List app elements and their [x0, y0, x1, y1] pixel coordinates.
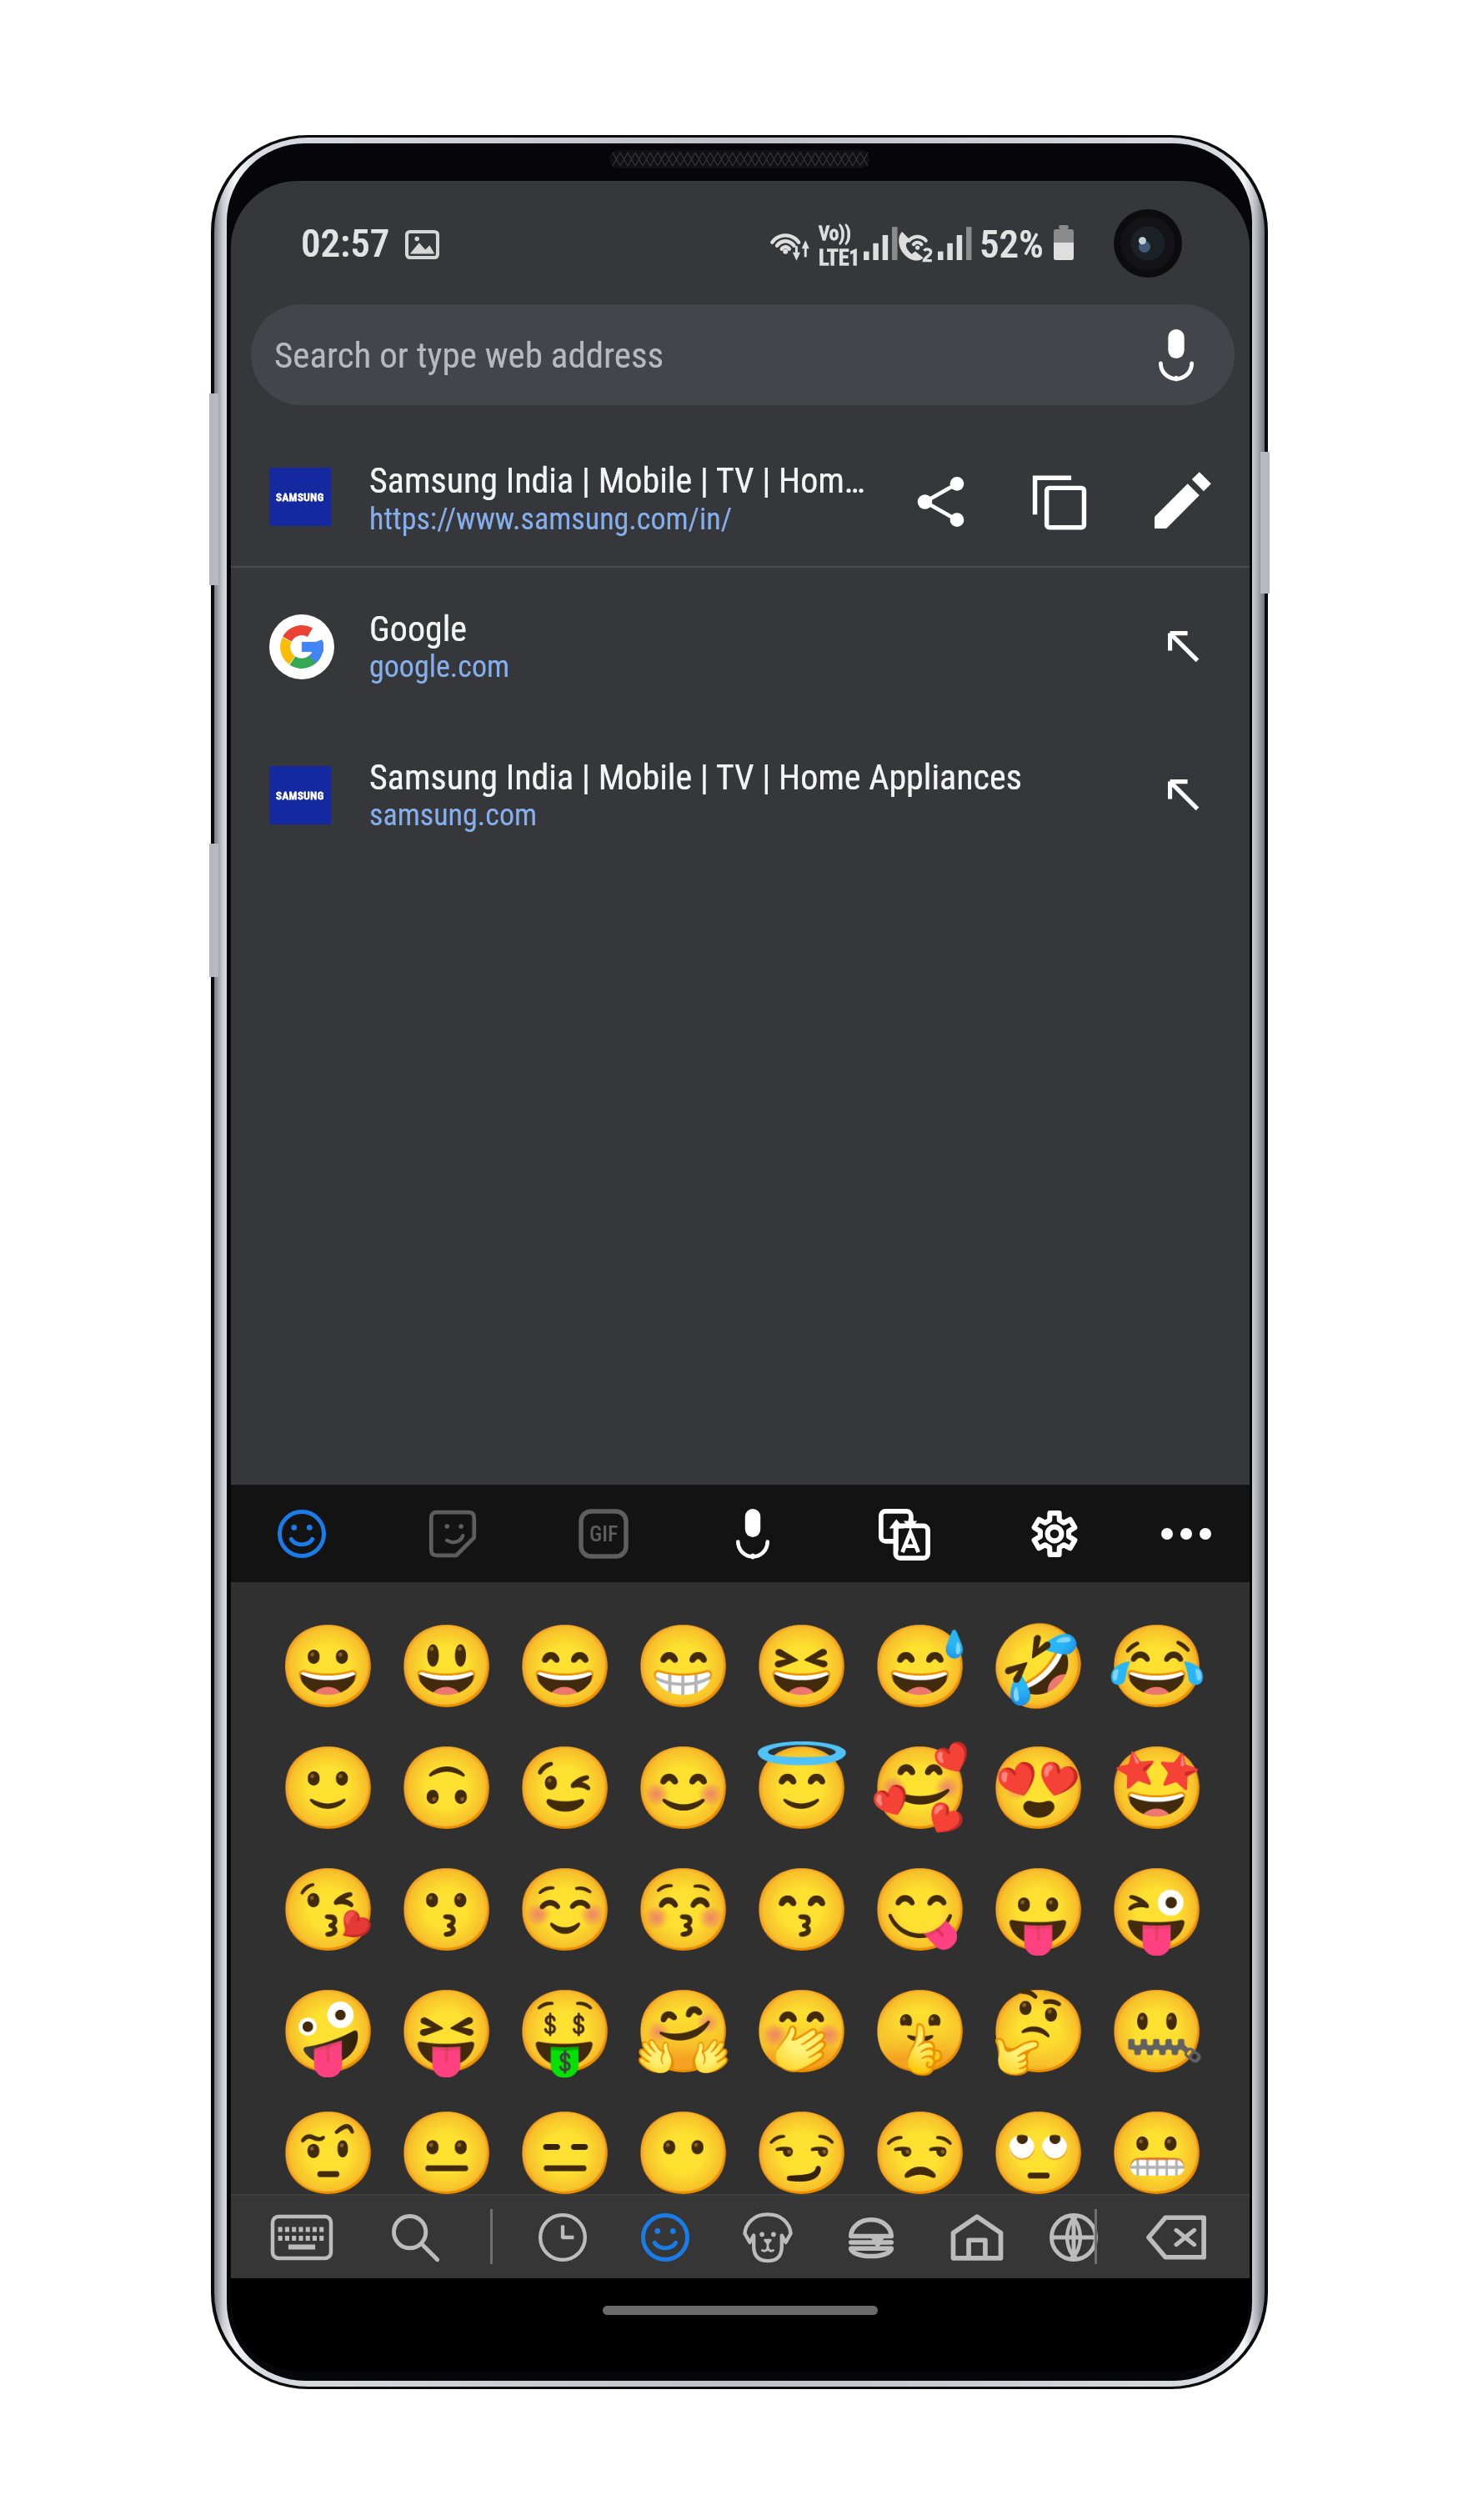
- button[interactable]: SAMSUNG: [231, 720, 1250, 869]
- staticText: 🤩: [1107, 1741, 1207, 1836]
- button[interactable]: 😘: [269, 1849, 388, 1971]
- button[interactable]: 🤫: [861, 1971, 979, 2092]
- staticText: 😑: [515, 2107, 615, 2201]
- button[interactable]: Recently used: [521, 2196, 604, 2278]
- staticText: 😊: [634, 1741, 734, 1836]
- button[interactable]: 😜: [1098, 1849, 1216, 1971]
- button[interactable]: 😊: [624, 1727, 743, 1849]
- button[interactable]: 🤗: [624, 1971, 743, 2092]
- staticText: google.com: [369, 649, 510, 684]
- staticText: 😐: [397, 2107, 497, 2201]
- staticText: 🤗: [634, 1985, 734, 2079]
- button[interactable]: Insert suggestion: [1142, 720, 1225, 869]
- button[interactable]: Keyboard: [260, 2196, 343, 2278]
- button[interactable]: Food and drink: [829, 2196, 913, 2278]
- button[interactable]: 🤪: [269, 1971, 388, 2092]
- button[interactable]: Animals and nature: [726, 2196, 809, 2278]
- button[interactable]: Smileys and people: [624, 2196, 707, 2278]
- button[interactable]: Activities: [1032, 2196, 1115, 2278]
- button[interactable]: GIF: [555, 1485, 652, 1582]
- button[interactable]: 😃: [388, 1606, 506, 1727]
- button[interactable]: Emoji: [253, 1485, 350, 1582]
- button[interactable]: 😇: [743, 1727, 861, 1849]
- staticText: 😀: [278, 1620, 378, 1714]
- button[interactable]: 😆: [743, 1606, 861, 1727]
- staticText: 😏: [752, 2107, 852, 2201]
- button[interactable]: Stickers: [404, 1485, 501, 1582]
- button[interactable]: 🙄: [979, 2092, 1098, 2214]
- button[interactable]: 🤭: [743, 1971, 861, 2092]
- button[interactable]: 🤐: [1098, 1971, 1216, 2092]
- staticText: SAMSUNG: [276, 789, 324, 802]
- button[interactable]: 🤣: [979, 1606, 1098, 1727]
- button[interactable]: 😶: [624, 2092, 743, 2214]
- staticText: 🤑: [515, 1985, 615, 2079]
- staticText: https://www.samsung.com/in/: [369, 502, 733, 537]
- staticText: 😍: [989, 1741, 1089, 1836]
- button[interactable]: 😏: [743, 2092, 861, 2214]
- button[interactable]: 😁: [624, 1606, 743, 1727]
- staticText: 😙: [752, 1863, 852, 1957]
- staticText: GIF: [589, 1521, 619, 1546]
- button[interactable]: 🥰: [861, 1727, 979, 1849]
- button[interactable]: 😬: [1098, 2092, 1216, 2214]
- button[interactable]: 😋: [861, 1849, 979, 1971]
- staticText: 😇: [752, 1741, 852, 1836]
- button[interactable]: Google: [231, 572, 1250, 721]
- staticText: ☺️: [515, 1863, 615, 1957]
- staticText: 😘: [278, 1863, 378, 1957]
- button[interactable]: 😂: [1098, 1606, 1216, 1727]
- button[interactable]: Edit: [1131, 452, 1231, 552]
- button[interactable]: Keyboard settings: [1006, 1485, 1103, 1582]
- button[interactable]: 😀: [269, 1606, 388, 1727]
- staticText: 😅: [870, 1620, 970, 1714]
- button[interactable]: 🤨: [269, 2092, 388, 2214]
- button[interactable]: 😛: [979, 1849, 1098, 1971]
- button[interactable]: ☺️: [506, 1849, 624, 1971]
- staticText: 😒: [870, 2107, 970, 2201]
- button[interactable]: Translate: [855, 1485, 952, 1582]
- button[interactable]: Search emoji: [373, 2196, 457, 2278]
- staticText: Vo)): [819, 223, 852, 245]
- staticText: 02:57: [301, 220, 390, 266]
- staticText: 😬: [1107, 2107, 1207, 2201]
- button[interactable]: 😐: [388, 2092, 506, 2214]
- button[interactable]: 😚: [624, 1849, 743, 1971]
- staticText: 🤣: [989, 1620, 1089, 1714]
- button[interactable]: SAMSUNG: [231, 417, 1250, 569]
- staticText: 😉: [515, 1741, 615, 1836]
- staticText: 52%: [979, 221, 1044, 267]
- button[interactable]: 🙃: [388, 1727, 506, 1849]
- button[interactable]: 😝: [388, 1971, 506, 2092]
- button[interactable]: Voice input: [704, 1485, 801, 1582]
- button[interactable]: 🙂: [269, 1727, 388, 1849]
- button[interactable]: 😉: [506, 1727, 624, 1849]
- staticText: 🥰: [870, 1741, 970, 1836]
- button[interactable]: 😅: [861, 1606, 979, 1727]
- button[interactable]: 🤩: [1098, 1727, 1216, 1849]
- button[interactable]: Copy link: [1010, 452, 1110, 552]
- button[interactable]: 😍: [979, 1727, 1098, 1849]
- button[interactable]: Travel and places: [935, 2196, 1019, 2278]
- staticText: 😄: [515, 1620, 615, 1714]
- button[interactable]: 😑: [506, 2092, 624, 2214]
- button[interactable]: [603, 2306, 878, 2315]
- button[interactable]: 🤑: [506, 1971, 624, 2092]
- button[interactable]: Voice search: [1141, 320, 1211, 390]
- button[interactable]: 😄: [506, 1606, 624, 1727]
- button[interactable]: 😒: [861, 2092, 979, 2214]
- button[interactable]: Search or type web address: [251, 304, 1235, 405]
- button[interactable]: 😙: [743, 1849, 861, 1971]
- staticText: 😁: [634, 1620, 734, 1714]
- staticText: samsung.com: [369, 798, 538, 833]
- button[interactable]: 😗: [388, 1849, 506, 1971]
- button[interactable]: More options: [1138, 1485, 1235, 1582]
- button[interactable]: Share: [892, 452, 992, 552]
- button[interactable]: 🤔: [979, 1971, 1098, 2092]
- staticText: 🤔: [989, 1985, 1089, 2079]
- staticText: 😂: [1107, 1620, 1207, 1714]
- staticText: Google: [369, 609, 468, 649]
- button[interactable]: Insert suggestion: [1142, 572, 1225, 721]
- button[interactable]: Backspace: [1135, 2196, 1218, 2278]
- staticText: 😃: [397, 1620, 497, 1714]
